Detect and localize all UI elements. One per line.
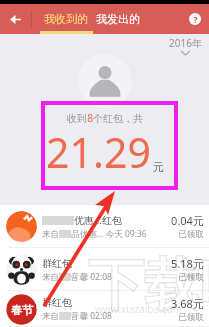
staticText: 来自 <box>42 311 59 322</box>
button[interactable]: 春节 <box>0 291 209 327</box>
staticText: 0.04元 <box>171 213 204 228</box>
staticText: www.xiazaiba.com <box>95 302 182 316</box>
staticText: 音馨 02:08 <box>71 271 112 283</box>
staticText: 来自 <box>42 229 59 240</box>
button[interactable]: 2016年 <box>165 36 205 55</box>
staticText: 优惠…红包 <box>74 213 122 227</box>
staticText: 8 <box>87 111 93 125</box>
staticText: 3.68元 <box>171 296 204 311</box>
staticText: 春节 <box>11 303 33 317</box>
staticText: 5.18元 <box>171 256 204 271</box>
staticText: 音馨 02:08 <box>71 310 112 322</box>
staticText: 来自 <box>42 272 59 283</box>
button[interactable]: Back <box>0 4 31 34</box>
staticText: 我收到的 <box>44 12 88 26</box>
staticText: 收到 <box>67 112 87 125</box>
button[interactable]: 我收到的 <box>38 4 94 34</box>
staticText: 元 <box>153 160 164 174</box>
staticText: 21.29 <box>46 124 151 180</box>
staticText: 品优惠… 今天 09:36 <box>71 228 147 240</box>
staticText: 群红包 <box>42 296 72 309</box>
staticText: ? <box>193 13 198 25</box>
button[interactable]: 群红包 <box>0 248 209 291</box>
staticText: 我发出的 <box>96 12 140 26</box>
button[interactable]: Help <box>180 4 209 34</box>
staticText: 下载吧 <box>88 250 209 321</box>
staticText: 已领取 <box>178 312 204 323</box>
staticText: 已领取 <box>178 272 204 283</box>
staticText: 已领取 <box>178 229 204 240</box>
staticText: 群红包 <box>42 257 72 270</box>
button[interactable]: 我发出的 <box>90 4 146 34</box>
staticText: 2016年 <box>169 36 202 50</box>
button[interactable]: 优惠…红包 <box>0 205 209 248</box>
staticText: 个红包，共 <box>93 112 143 125</box>
